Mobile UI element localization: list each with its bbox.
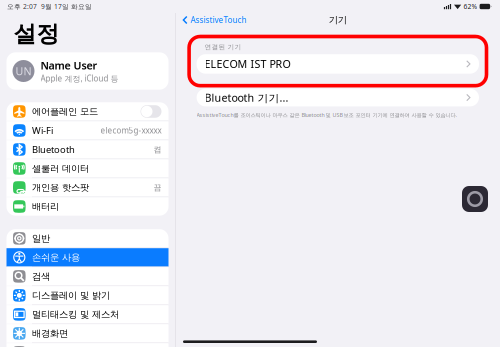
staticText: 연결된 기기 [205, 43, 242, 51]
staticText: ELECOM IST PRO [205, 57, 291, 71]
button[interactable]: 셀룰러 데이터 [6, 159, 168, 178]
button[interactable]: 에어플레인 모드 [6, 102, 168, 121]
staticText: Apple 계정, iCloud 등 [40, 73, 118, 84]
staticText: Bluetooth 기기... [205, 90, 289, 105]
staticText: 62% [464, 2, 478, 11]
staticText: 오후 2:07 [7, 2, 37, 11]
staticText: 9월 17일 화요일 [41, 2, 92, 11]
button[interactable]: 검색 [6, 267, 168, 286]
staticText: 개인용 핫스팟 [32, 182, 89, 193]
staticText: Bluetooth [32, 143, 75, 156]
staticText: 멀티태스킹 및 제스처 [32, 309, 119, 320]
staticText: 검색 [32, 271, 50, 282]
staticText: elecom5g-xxxxx [100, 125, 161, 136]
staticText: 기기 [329, 14, 347, 26]
button[interactable]: 손쉬운 사용 [6, 248, 168, 267]
button[interactable]: ELECOM IST PRO [197, 54, 479, 74]
button[interactable]: Wi-Fi [6, 121, 168, 140]
button[interactable]: Bluetooth 기기... [197, 89, 479, 106]
staticText: UN [15, 64, 31, 78]
button[interactable]: 멀티태스킹 및 제스처 [6, 305, 168, 324]
staticText: 배경화면 [32, 328, 68, 339]
button[interactable]: 일반 [6, 229, 168, 248]
staticText: 끔 [153, 183, 161, 192]
staticText: 셀룰러 데이터 [32, 163, 89, 174]
button[interactable]: 배터리 [6, 197, 168, 216]
staticText: 켬 [153, 145, 161, 154]
button[interactable]: UN [6, 52, 168, 90]
staticText: 배터리 [32, 201, 59, 212]
staticText: 설정 [13, 20, 59, 48]
button[interactable]: 디스플레이 및 밝기 [6, 286, 168, 305]
button[interactable]: 배경화면 [6, 324, 168, 343]
staticText: 일반 [32, 233, 50, 244]
staticText: Name User [40, 58, 97, 72]
staticText: 디스플레이 및 밝기 [32, 290, 110, 301]
button[interactable]: AssistiveTouch [462, 186, 488, 212]
button[interactable]: 개인용 핫스팟 [6, 178, 168, 197]
staticText: AssistiveTouch를 조이스틱이나 마우스 같은 Bluetooth … [197, 111, 457, 118]
staticText: AssistiveTouch [191, 15, 247, 25]
staticText: Wi-Fi [32, 124, 53, 137]
button[interactable]: Bluetooth [6, 140, 168, 159]
button[interactable]: Siri [6, 343, 168, 347]
staticText: 에어플레인 모드 [32, 106, 98, 117]
staticText: 손쉬운 사용 [32, 252, 80, 263]
button[interactable]: AssistiveTouch [176, 11, 247, 29]
